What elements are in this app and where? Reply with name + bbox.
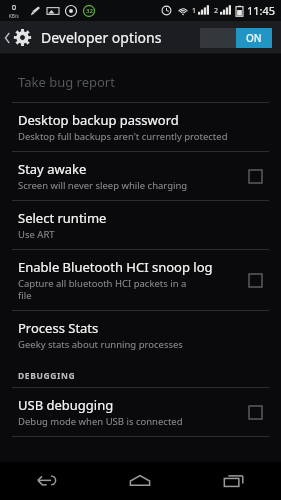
staticText: Enable Bluetooth HCI snoop log [18, 258, 213, 276]
staticText: Developer options [41, 28, 162, 47]
button[interactable]: Select runtime [0, 201, 281, 249]
staticText: USB debugging [18, 396, 114, 414]
staticText: 32 [86, 7, 93, 15]
staticText: 1 [192, 6, 197, 16]
staticText: Desktop full backups aren't currently pr… [18, 130, 228, 143]
button[interactable]: Navigate up [0, 21, 34, 54]
button[interactable]: USB debugging [0, 388, 281, 436]
button[interactable]: Process Stats [0, 311, 281, 359]
staticText: DEBUGGING [18, 370, 76, 382]
button[interactable]: Developer options on [200, 28, 272, 48]
staticText: Stay awake [18, 160, 87, 178]
staticText: Take bug report [18, 73, 115, 91]
staticText: Screen will never sleep while charging [18, 179, 188, 192]
staticText: Geeky stats about running processes [18, 338, 183, 351]
staticText: Process Stats [18, 319, 99, 337]
button[interactable]: Stay awake [0, 152, 281, 200]
staticText: Capture all bluetooth HCI packets in a f… [18, 277, 187, 302]
staticText: Use ART [18, 228, 55, 241]
button[interactable]: Enable Bluetooth HCI snoop log [0, 250, 281, 310]
staticText: 0 [12, 3, 17, 13]
button[interactable]: Back [0, 462, 93, 500]
button[interactable]: Recent apps [187, 462, 281, 500]
staticText: ON [246, 31, 262, 45]
staticText: Debug mode when USB is connected [18, 415, 183, 428]
staticText: Desktop backup password [18, 111, 179, 129]
button[interactable]: Desktop backup password [0, 103, 281, 151]
staticText: 2 [214, 6, 219, 16]
button[interactable]: Take bug report [0, 62, 281, 102]
staticText: 11:45 [247, 3, 276, 18]
staticText: Select runtime [18, 209, 107, 227]
staticText: KB/s [9, 13, 19, 19]
button[interactable]: Home [93, 462, 187, 500]
